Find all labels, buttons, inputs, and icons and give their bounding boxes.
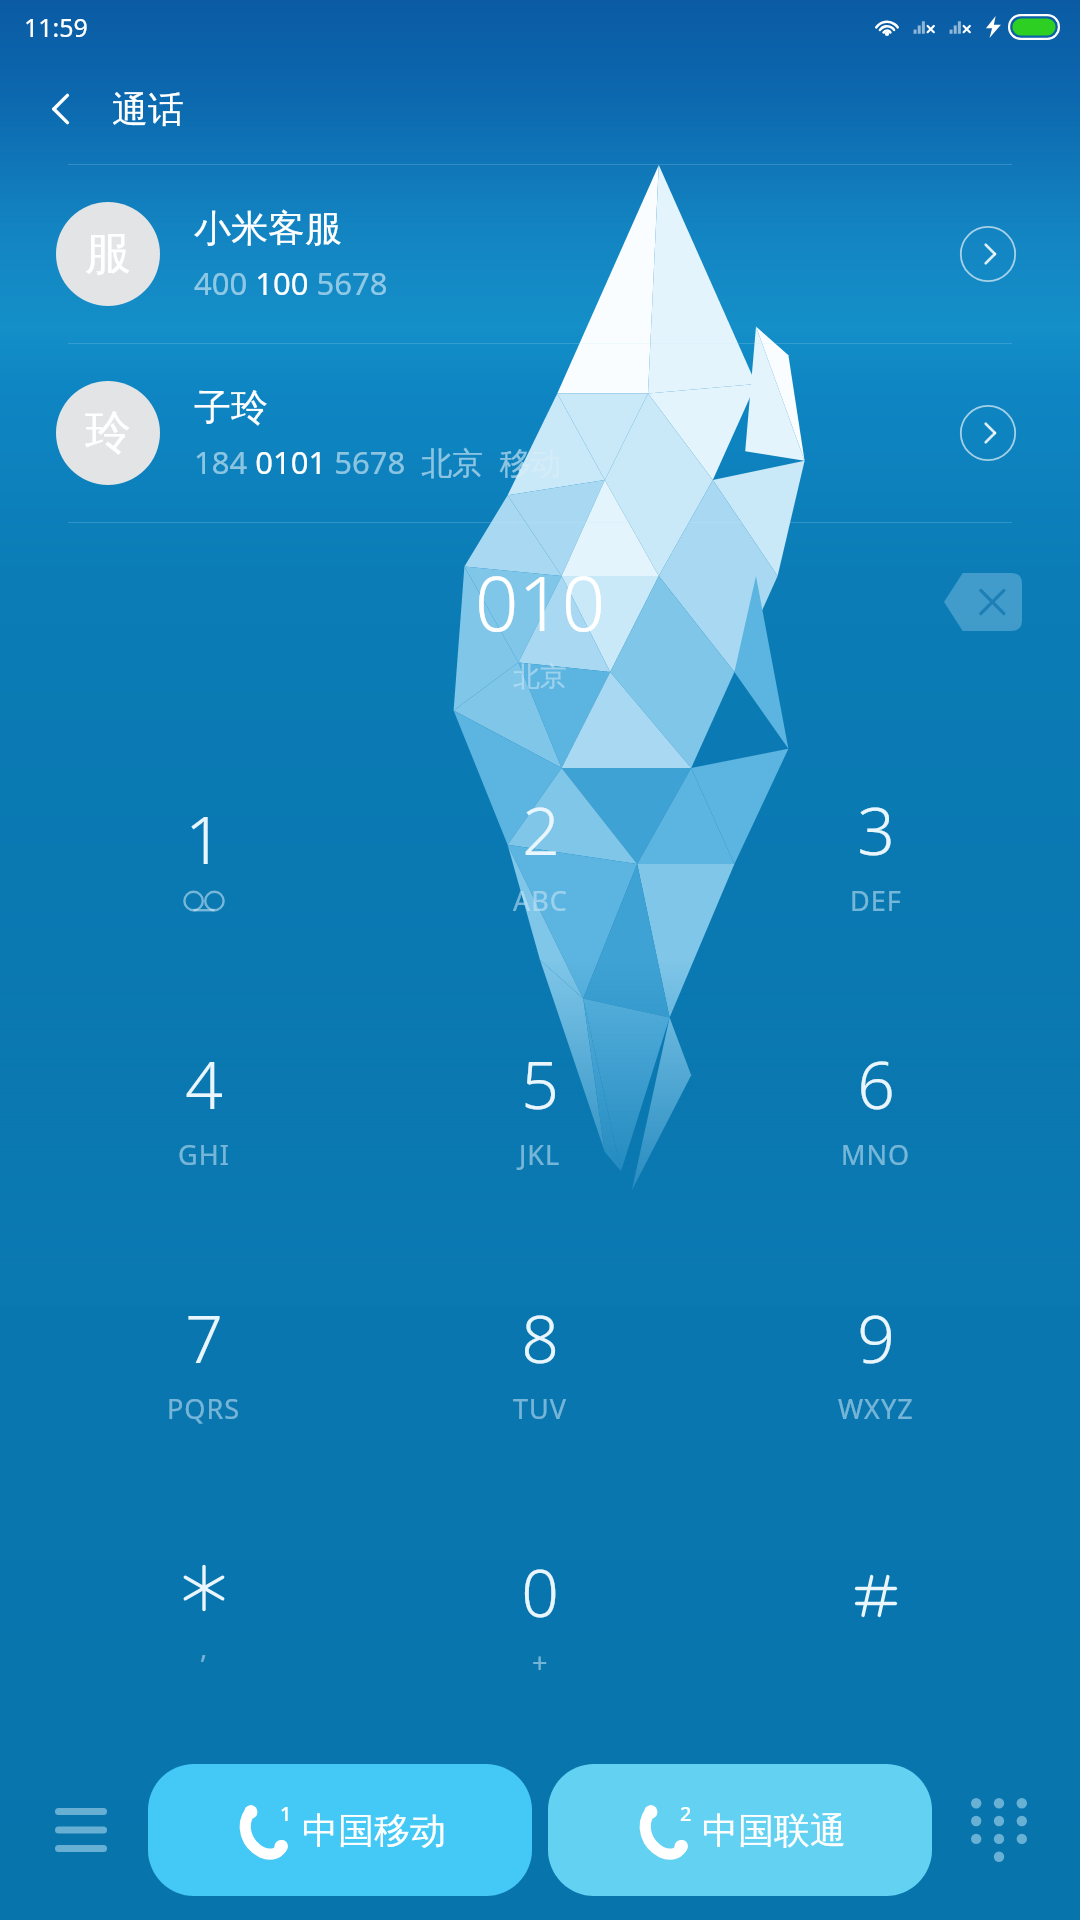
staticText: JKL (519, 1136, 561, 1173)
staticText: 2 (680, 1800, 692, 1827)
staticText: 11:59 (24, 10, 88, 44)
staticText: MNO (841, 1136, 911, 1173)
staticText: 3 (857, 784, 895, 874)
button[interactable]: 7 (36, 1232, 372, 1486)
staticText: + (532, 1644, 549, 1681)
staticText: 玲 (85, 404, 131, 462)
staticText: 184 0101 5678 北京 移动 (194, 441, 562, 483)
staticText: 服 (85, 225, 131, 283)
staticText: 5 (521, 1038, 559, 1128)
button[interactable]: 5 (372, 978, 708, 1232)
staticText: DEF (850, 882, 902, 919)
button[interactable]: Keypad (944, 1775, 1054, 1885)
button[interactable]: 1 (36, 725, 372, 978)
staticText: 1 (185, 793, 223, 883)
button[interactable]: 4 (36, 978, 372, 1232)
staticText: 4 (185, 1038, 223, 1128)
staticText: 010 (475, 550, 606, 654)
button[interactable]: 2 (548, 1764, 932, 1896)
button[interactable]: Contact details (952, 218, 1024, 290)
staticText: 8 (521, 1292, 559, 1382)
staticText: 小米客服 (194, 205, 342, 252)
button[interactable]: Backspace (928, 559, 1038, 645)
button[interactable]: Back (26, 73, 98, 145)
staticText: TUV (513, 1390, 567, 1427)
button[interactable]: Menu (26, 1775, 136, 1885)
staticText: 通话 (112, 87, 184, 132)
staticText: 子玲 (194, 384, 268, 431)
button[interactable]: 3 (708, 725, 1044, 978)
button[interactable]: , (36, 1486, 372, 1740)
staticText: 6 (857, 1038, 895, 1128)
staticText: 2 (522, 784, 560, 874)
button[interactable]: 服 (0, 165, 1080, 343)
button[interactable]: 1 (148, 1764, 532, 1896)
button[interactable]: 玲 (0, 344, 1080, 522)
staticText: PQRS (167, 1390, 241, 1427)
button[interactable]: 6 (708, 978, 1044, 1232)
staticText: 9 (857, 1292, 895, 1382)
staticText: 北京 (513, 660, 567, 694)
button[interactable]: 0 (372, 1486, 708, 1740)
staticText: 0 (521, 1546, 559, 1636)
staticText: 400 100 5678 (194, 262, 388, 304)
staticText: 中国联通 (702, 1808, 846, 1853)
staticText: 1 (280, 1800, 292, 1827)
button[interactable]: 9 (708, 1232, 1044, 1486)
staticText: GHI (178, 1136, 230, 1173)
button[interactable]: 8 (372, 1232, 708, 1486)
button[interactable]: 2 (372, 725, 708, 978)
staticText: WXYZ (838, 1390, 914, 1427)
button[interactable]: Contact details (952, 397, 1024, 469)
staticText: ABC (513, 882, 568, 919)
staticText: 7 (185, 1292, 223, 1382)
staticText: 中国移动 (302, 1808, 446, 1853)
staticText: , (200, 1629, 209, 1666)
button[interactable] (708, 1486, 1044, 1740)
